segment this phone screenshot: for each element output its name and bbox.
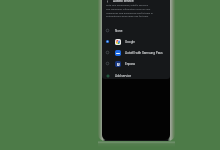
button[interactable]: Google — [102, 36, 170, 47]
staticText: Enpass — [125, 62, 136, 66]
staticText: automatically when apps ask for them. — [106, 15, 149, 18]
button[interactable]: U — [102, 58, 170, 69]
staticText: Add service — [115, 74, 132, 78]
staticText: usernames and passwords and fill them in — [106, 12, 153, 15]
staticText: can remember information such as your — [106, 8, 151, 11]
staticText: U — [117, 62, 120, 66]
staticText: Google — [125, 40, 135, 44]
other: Back — [105, 0, 109, 3]
staticText: None — [115, 29, 123, 33]
staticText: With your permission, autofill services — [106, 4, 148, 7]
staticText: Autofill service — [113, 0, 134, 3]
button[interactable]: None — [102, 25, 170, 36]
button[interactable]: Autofill with Samsung Pass — [102, 47, 170, 58]
button[interactable]: Add service — [102, 70, 170, 81]
button[interactable]: Back — [102, 0, 134, 3]
staticText: Autofill with Samsung Pass — [125, 51, 163, 55]
